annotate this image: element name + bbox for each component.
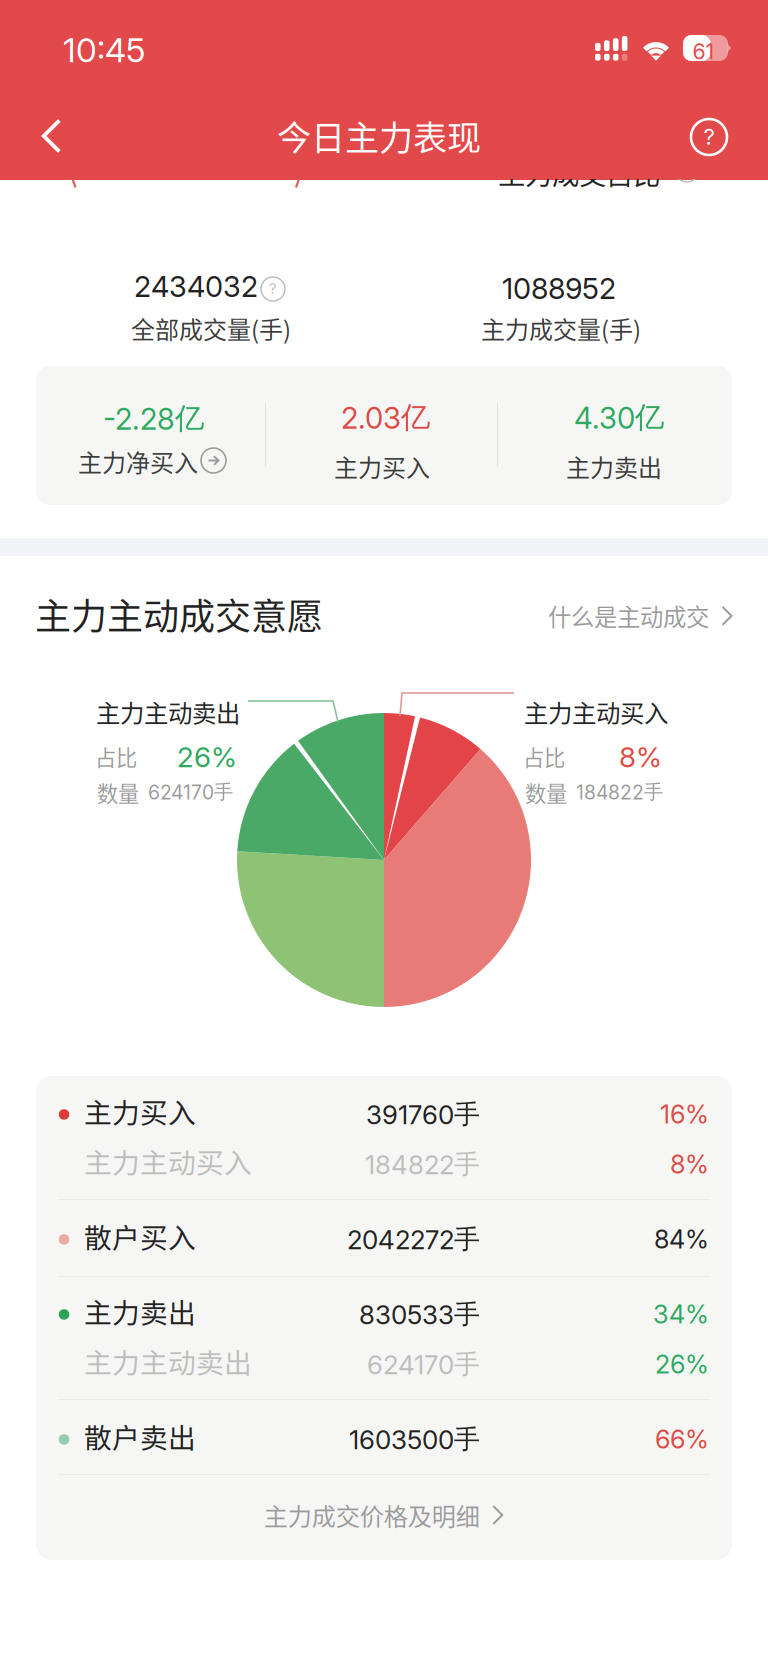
staticText: 散户卖出 bbox=[84, 1416, 196, 1456]
staticText: 66% bbox=[655, 1424, 709, 1455]
staticText: 主力成交量(手) bbox=[481, 311, 641, 346]
staticText: 8% bbox=[619, 740, 662, 774]
button[interactable]: 返回 bbox=[21, 105, 83, 167]
staticText: 占比 bbox=[95, 741, 137, 772]
staticText: 624170手 bbox=[367, 1348, 480, 1381]
button[interactable]: 说明 bbox=[261, 277, 285, 301]
staticText: 1088952 bbox=[502, 271, 616, 306]
staticText: 今日主力表现 bbox=[277, 111, 481, 160]
staticText: 2434032 bbox=[134, 269, 258, 304]
staticText: ? bbox=[269, 280, 277, 298]
staticText: 16% bbox=[660, 1099, 709, 1130]
staticText: 26% bbox=[655, 1349, 709, 1380]
staticText: 61 bbox=[692, 38, 714, 64]
staticText: 主力卖出 bbox=[84, 1291, 196, 1331]
staticText: 184822手 bbox=[365, 1148, 480, 1181]
staticText: 10:45 bbox=[63, 30, 145, 70]
button[interactable]: 帮助 bbox=[678, 106, 740, 168]
staticText: 主力成交价格及明细 bbox=[264, 1497, 480, 1532]
staticText: 主力主动买入 bbox=[84, 1141, 252, 1181]
staticText: 主力主动成交意愿 bbox=[35, 588, 323, 640]
staticText: 主力卖出 bbox=[566, 449, 662, 484]
staticText: 184822手 bbox=[576, 780, 663, 804]
staticText: 26% bbox=[177, 740, 237, 774]
staticText: 2.03亿 bbox=[341, 399, 430, 436]
staticText: 主力主动卖出 bbox=[96, 694, 240, 729]
staticText: 主力买入 bbox=[334, 449, 430, 484]
staticText: 34% bbox=[653, 1299, 709, 1330]
staticText: 830533手 bbox=[359, 1298, 480, 1331]
staticText: 2042272手 bbox=[347, 1223, 480, 1256]
staticText: 主力主动卖出 bbox=[84, 1341, 252, 1381]
staticText: 624170手 bbox=[148, 780, 233, 804]
staticText: 主力成交占比 bbox=[498, 153, 660, 193]
staticText: 全部成交量(手) bbox=[131, 311, 291, 346]
staticText: 4.30亿 bbox=[574, 399, 664, 436]
button[interactable]: 什么是主动成交 bbox=[548, 599, 733, 633]
staticText: 数量 bbox=[97, 777, 139, 808]
button[interactable]: 主力成交价格及明细 bbox=[36, 1472, 732, 1558]
staticText: 84% bbox=[654, 1224, 709, 1255]
staticText: 8% bbox=[670, 1149, 709, 1180]
staticText: -2.28亿 bbox=[103, 400, 204, 437]
staticText: 391760手 bbox=[366, 1098, 480, 1131]
staticText: 1603500手 bbox=[349, 1423, 480, 1456]
staticText: ? bbox=[703, 123, 714, 150]
staticText: 什么是主动成交 bbox=[548, 599, 709, 633]
staticText: 占比 bbox=[523, 741, 565, 772]
staticText: 主力净买入 bbox=[78, 444, 198, 479]
staticText: 数量 bbox=[525, 777, 567, 808]
staticText: 散户买入 bbox=[84, 1216, 196, 1256]
staticText: 主力主动买入 bbox=[524, 694, 668, 729]
staticText: 主力买入 bbox=[84, 1091, 196, 1131]
